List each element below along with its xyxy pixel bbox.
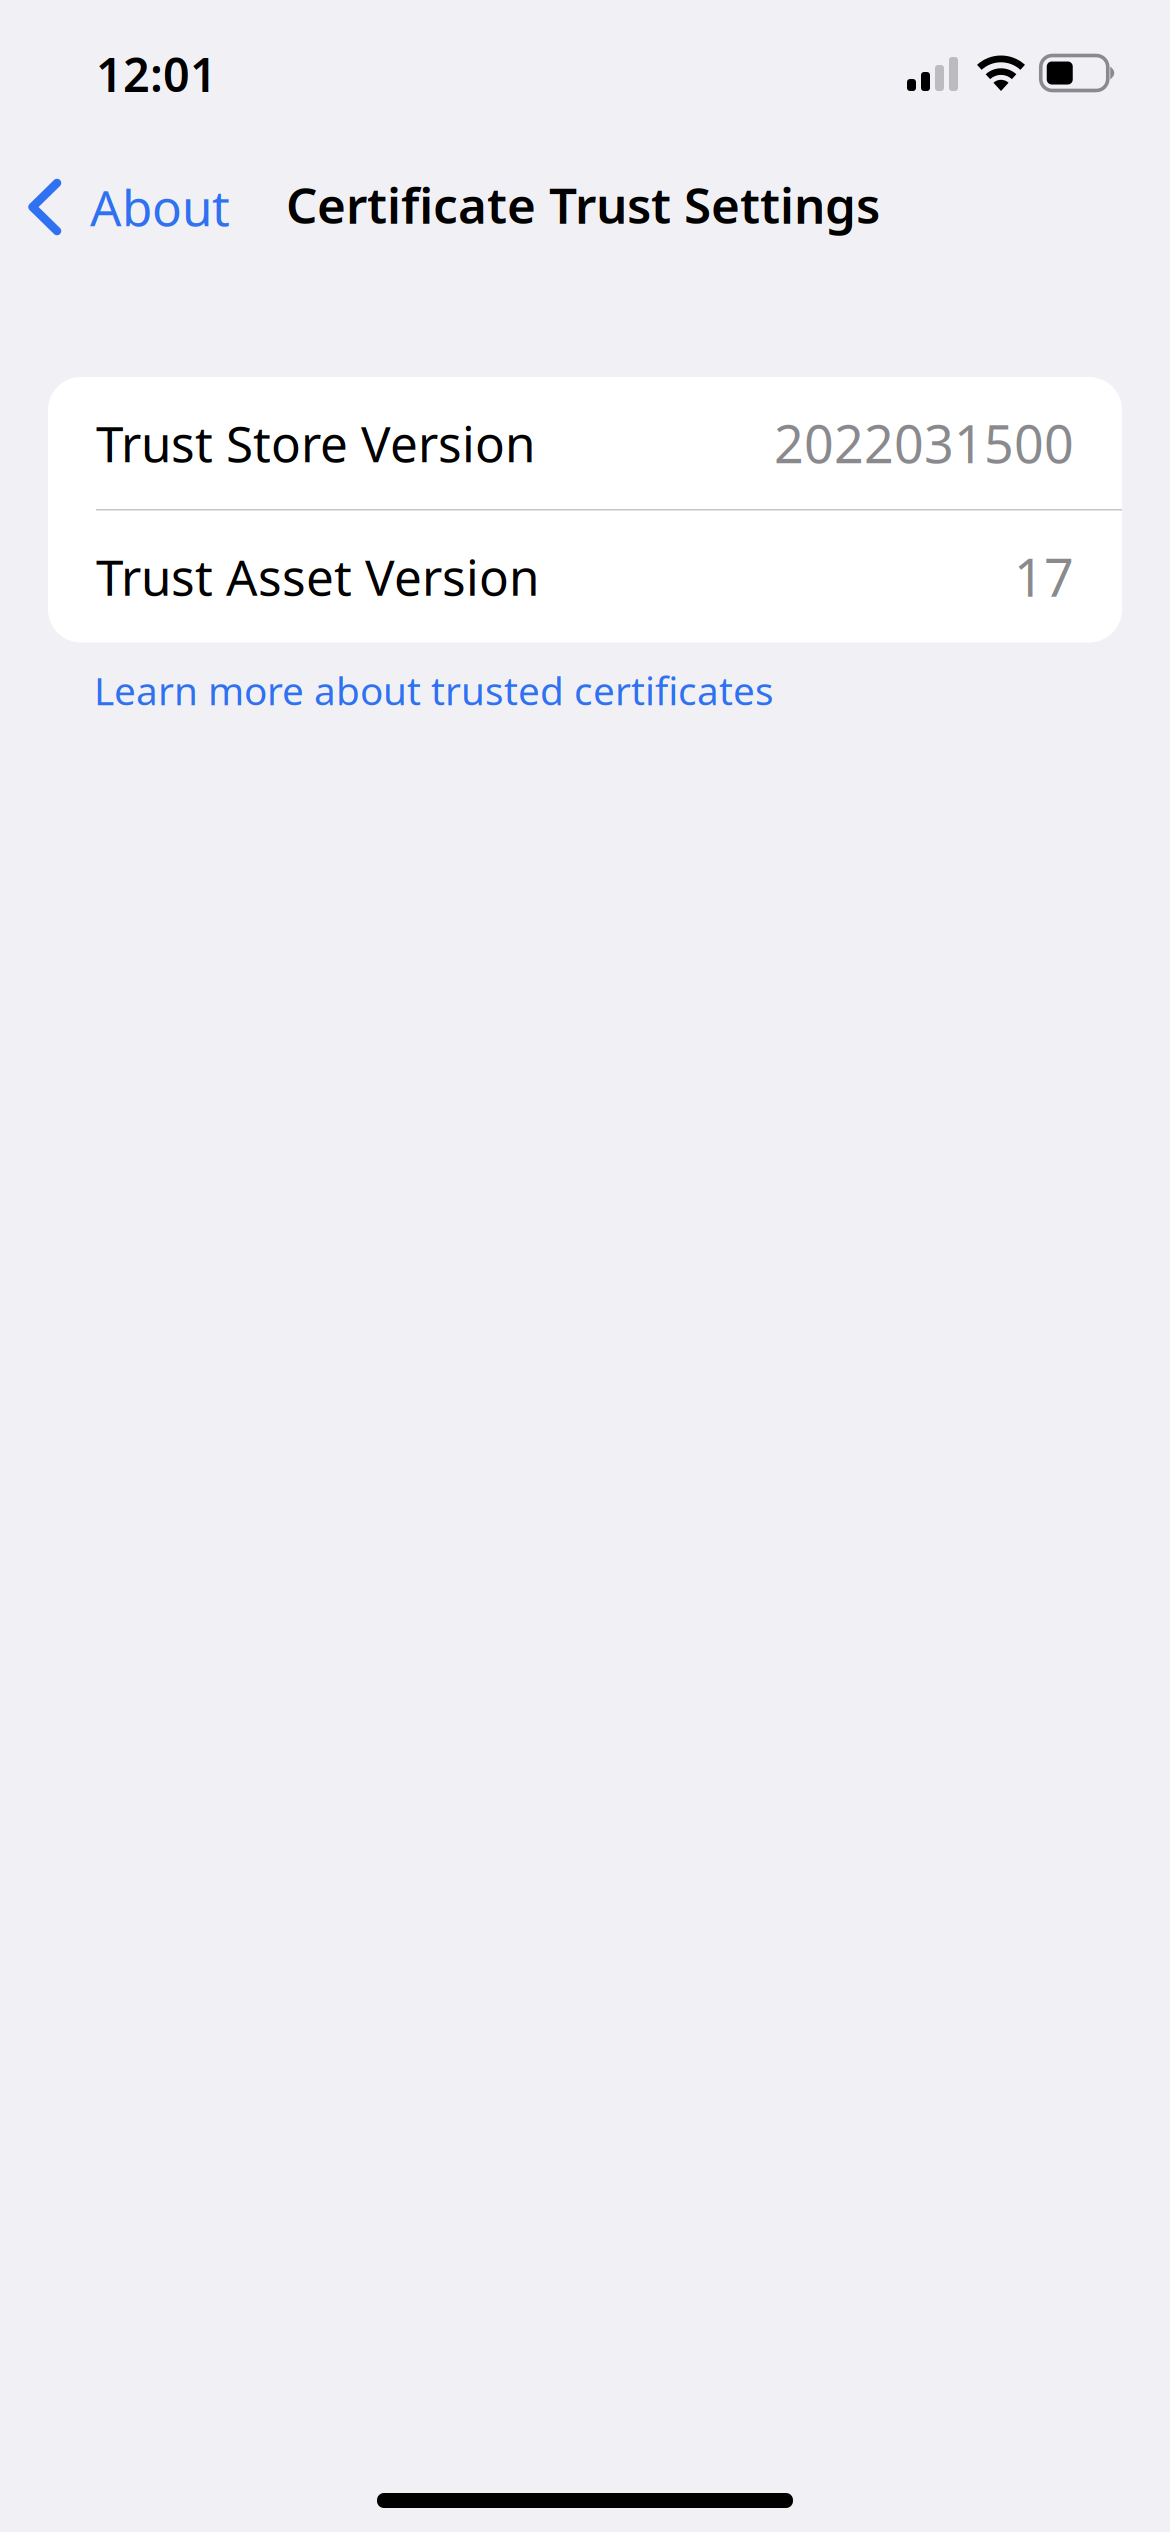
button[interactable]: About — [0, 141, 248, 273]
staticText: Certificate Trust Settings — [286, 172, 880, 237]
staticText: Trust Store Version — [96, 410, 535, 476]
staticText: 2022031500 — [774, 408, 1074, 478]
staticText: Trust Asset Version — [96, 544, 539, 609]
staticText: 12:01 — [96, 43, 217, 105]
staticText: 17 — [1014, 542, 1074, 611]
staticText: About — [90, 174, 230, 240]
button[interactable]: Learn more about trusted certificates — [0, 642, 1170, 716]
staticText: Learn more about trusted certificates — [94, 664, 774, 716]
